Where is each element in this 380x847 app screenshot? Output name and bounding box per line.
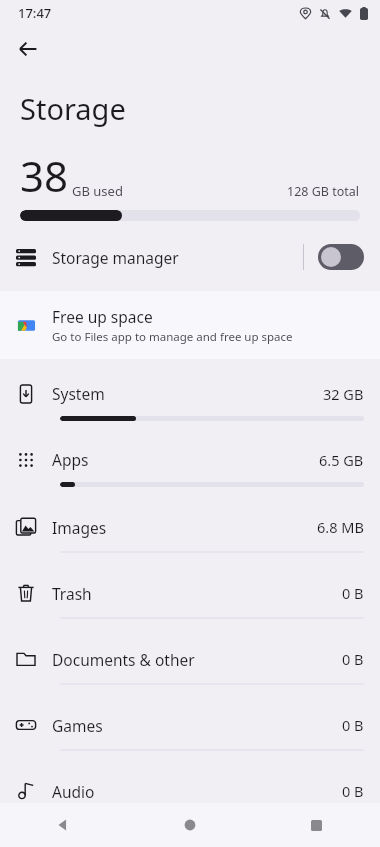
staticText: Images <box>52 517 317 538</box>
button[interactable]: Documents & other <box>0 635 380 701</box>
staticText: Trash <box>52 583 342 604</box>
button[interactable]: Back <box>8 29 48 69</box>
button[interactable]: Free up space <box>0 291 380 359</box>
staticText: Go to Files app to manage and free up sp… <box>52 329 293 345</box>
button[interactable]: Storage manager toggle <box>318 244 364 270</box>
staticText: 32 GB <box>323 384 364 404</box>
staticText: 128 GB total <box>287 183 360 200</box>
staticText: 0 B <box>342 583 364 603</box>
staticText: Storage <box>20 89 126 128</box>
staticText: 0 B <box>342 715 364 735</box>
staticText: Storage manager <box>52 247 303 268</box>
button[interactable]: Recent apps <box>253 803 380 847</box>
staticText: Documents & other <box>52 649 342 670</box>
button[interactable]: System <box>0 371 380 437</box>
button[interactable]: Games <box>0 701 380 767</box>
button[interactable]: Trash <box>0 569 380 635</box>
button[interactable]: Images <box>0 503 380 569</box>
staticText: GB used <box>72 182 123 200</box>
staticText: Free up space <box>52 306 153 327</box>
staticText: 0 B <box>342 781 364 801</box>
staticText: Games <box>52 715 342 736</box>
staticText: 0 B <box>342 649 364 669</box>
staticText: Audio <box>52 781 342 802</box>
button[interactable]: Audio <box>0 767 380 833</box>
button[interactable]: Apps <box>0 437 380 503</box>
staticText: 38 <box>20 147 69 204</box>
staticText: 6.5 GB <box>319 450 364 470</box>
button[interactable]: Storage manager <box>0 231 380 283</box>
staticText: System <box>52 383 323 404</box>
staticText: 17:47 <box>18 4 52 22</box>
button[interactable]: Home <box>126 803 253 847</box>
staticText: 6.8 MB <box>317 517 364 537</box>
staticText: Apps <box>52 449 319 470</box>
button[interactable]: Back <box>0 803 126 847</box>
